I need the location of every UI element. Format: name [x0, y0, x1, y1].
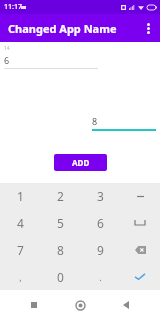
button[interactable]: 8: [92, 115, 156, 131]
staticText: 7: [17, 242, 24, 258]
staticText: 9: [97, 242, 104, 258]
staticText: 3: [97, 188, 104, 204]
staticText: 14: [4, 45, 10, 52]
button[interactable]: 2: [40, 183, 80, 209]
staticText: 8: [57, 242, 64, 258]
button[interactable]: 0: [40, 263, 80, 290]
staticText: 1: [17, 188, 24, 204]
button[interactable]: 6: [4, 54, 98, 69]
staticText: 8: [92, 115, 98, 127]
staticText: 6: [97, 215, 104, 231]
staticText: 4: [17, 215, 24, 231]
button[interactable]: Enter: [120, 263, 160, 290]
button[interactable]: Home: [57, 290, 103, 320]
button[interactable]: Minus: [120, 183, 160, 209]
staticText: 6: [4, 54, 10, 66]
button[interactable]: 3: [80, 183, 120, 209]
button[interactable]: 5: [40, 209, 80, 236]
button[interactable]: 4: [0, 209, 40, 236]
button[interactable]: Backspace: [120, 236, 160, 263]
button[interactable]: .: [80, 263, 120, 290]
button[interactable]: ADD: [54, 154, 107, 171]
button[interactable]: 6: [80, 209, 120, 236]
staticText: Changed App Name: [8, 21, 117, 36]
staticText: 2: [57, 188, 64, 204]
staticText: 0: [57, 269, 64, 285]
staticText: 11:17: [4, 2, 22, 12]
button[interactable]: Recents: [11, 290, 57, 320]
button[interactable]: Back: [103, 290, 149, 320]
button[interactable]: 1: [0, 183, 40, 209]
button[interactable]: ,: [0, 263, 40, 290]
button[interactable]: Space: [120, 209, 160, 236]
staticText: 5: [57, 215, 64, 231]
button[interactable]: 7: [0, 236, 40, 263]
staticText: .: [99, 271, 102, 283]
staticText: ,: [19, 271, 22, 283]
staticText: ADD: [72, 157, 90, 168]
button[interactable]: 9: [80, 236, 120, 263]
button[interactable]: More options: [136, 16, 160, 40]
button[interactable]: 8: [40, 236, 80, 263]
